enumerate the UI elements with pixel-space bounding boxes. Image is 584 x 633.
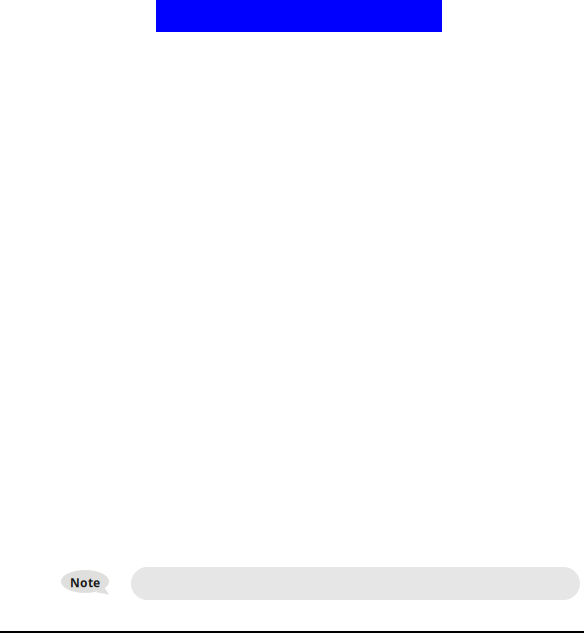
staticText: Note xyxy=(70,574,100,590)
button[interactable]: Note xyxy=(61,570,109,598)
